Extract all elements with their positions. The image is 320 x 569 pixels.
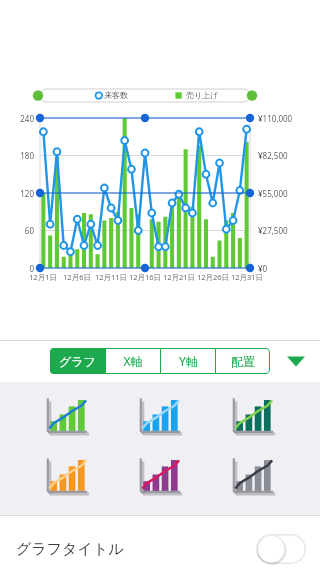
staticText: ¥82,500	[258, 150, 288, 161]
button[interactable]: X軸	[106, 348, 160, 374]
button[interactable]: Graph title toggle	[256, 534, 306, 564]
staticText: 120	[8, 188, 34, 199]
staticText: 240	[8, 113, 34, 124]
button[interactable]: Chart style	[41, 392, 93, 440]
staticText: 12月6日	[59, 272, 95, 282]
staticText: 12月26日	[195, 272, 231, 282]
staticText: 180	[8, 150, 34, 161]
staticText: 12月21日	[161, 272, 197, 282]
staticText: 12月11日	[93, 272, 129, 282]
staticText: 12月16日	[127, 272, 163, 282]
button[interactable]: グラフ	[50, 348, 105, 374]
button[interactable]: Expand options	[284, 349, 308, 373]
button[interactable]: Chart style	[227, 392, 279, 440]
button[interactable]: Chart style	[134, 452, 186, 500]
staticText: グラフタイトル	[16, 540, 124, 559]
staticText: ¥110,000	[258, 113, 293, 124]
staticText: 0	[8, 263, 34, 274]
staticText: 配置	[231, 354, 255, 369]
button[interactable]: Y軸	[161, 348, 215, 374]
staticText: ¥0	[258, 263, 268, 274]
staticText: X軸	[123, 353, 143, 369]
button[interactable]: Chart style	[227, 452, 279, 500]
button[interactable]: Chart style	[134, 392, 186, 440]
staticText: 12月1日	[25, 272, 61, 282]
staticText: ¥27,500	[258, 225, 288, 236]
button[interactable]: 配置	[216, 348, 270, 374]
staticText: 60	[8, 225, 34, 236]
staticText: 12月31日	[229, 272, 265, 282]
staticText: ¥55,000	[258, 188, 288, 199]
staticText: Y軸	[179, 353, 198, 369]
staticText: グラフ	[59, 354, 96, 369]
button[interactable]: Chart style	[41, 452, 93, 500]
staticText: 来客数	[104, 90, 128, 100]
staticText: 売り上げ	[186, 90, 219, 100]
button[interactable]: グラフタイトル	[0, 525, 320, 569]
